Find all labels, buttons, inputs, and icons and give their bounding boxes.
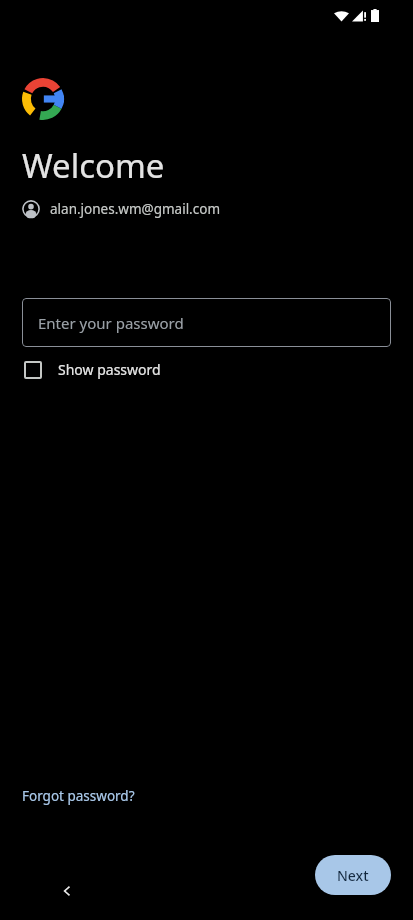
staticText: Welcome bbox=[22, 143, 165, 188]
button[interactable]: alan.jones.wm@gmail.com bbox=[22, 198, 221, 220]
button[interactable]: Show password bbox=[22, 358, 161, 381]
button[interactable]: Forgot password? bbox=[22, 783, 135, 809]
button[interactable]: Back bbox=[46, 870, 88, 912]
staticText: Forgot password? bbox=[22, 787, 135, 805]
staticText: Next bbox=[337, 866, 369, 885]
button[interactable]: Next bbox=[315, 855, 391, 895]
staticText: Show password bbox=[58, 360, 161, 379]
button[interactable]: Enter your password bbox=[22, 298, 391, 347]
staticText: alan.jones.wm@gmail.com bbox=[50, 200, 221, 218]
staticText: Enter your password bbox=[38, 313, 184, 333]
